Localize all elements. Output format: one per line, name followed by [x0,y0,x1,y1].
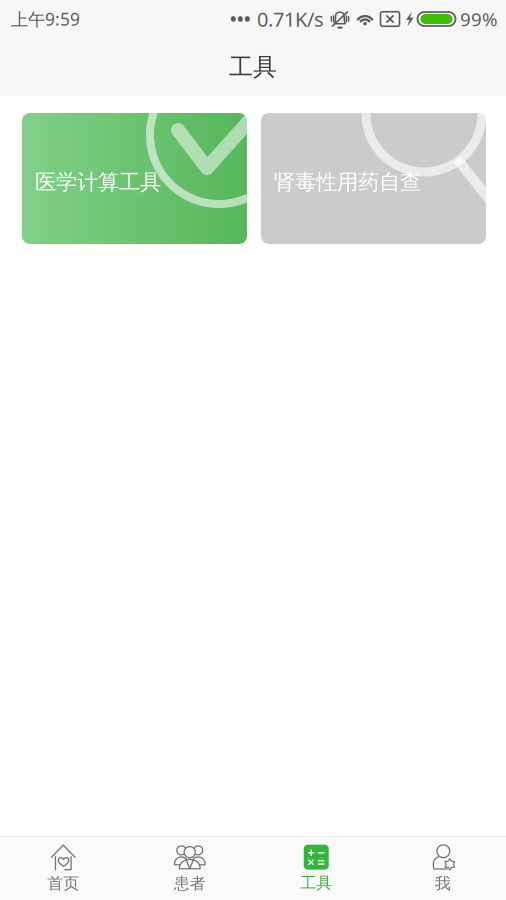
staticText: 首页 [47,874,79,893]
staticText: 肾毒性用药自查 [274,169,421,195]
button[interactable]: 工具 [253,837,379,899]
staticText: 患者 [174,874,206,893]
staticText: 0.71K/s [257,6,324,32]
staticText: 我 [435,874,451,893]
staticText: 医学计算工具 [35,169,161,195]
button[interactable]: 肾毒性用药自查 [261,113,486,244]
button[interactable]: 患者 [126,837,253,899]
staticText: 上午9:59 [11,7,80,30]
staticText: ••• [230,7,251,30]
button[interactable]: 首页 [0,837,126,899]
button[interactable]: 我 [379,837,506,899]
staticText: 工具 [229,52,277,82]
staticText: 工具 [300,873,332,893]
staticText: 99% [460,7,498,31]
button[interactable]: 医学计算工具 [22,113,247,244]
